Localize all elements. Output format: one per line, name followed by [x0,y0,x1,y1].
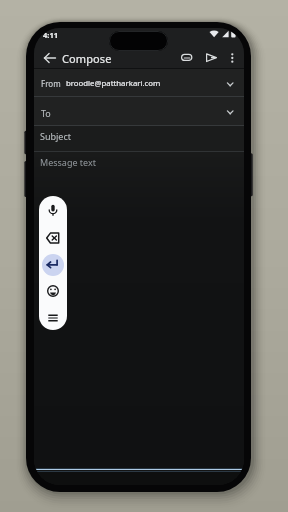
button[interactable]: To [34,97,244,125]
button[interactable] [43,308,63,328]
staticText: Subject [40,130,72,142]
button[interactable]: Subject [34,125,244,152]
button[interactable] [223,48,241,68]
staticText: broodle@pattharkari.com [66,78,161,89]
staticText: From [41,78,61,89]
button[interactable] [176,48,197,68]
staticText: Message text [40,156,97,168]
button[interactable] [40,48,60,68]
staticText: To [41,107,51,119]
staticText: 4:11 [43,30,58,40]
button[interactable] [42,254,64,276]
button[interactable] [43,281,63,301]
button[interactable] [43,228,63,248]
staticText: Compose [62,51,112,66]
button[interactable]: Message text [34,152,244,468]
button[interactable] [43,200,63,220]
button[interactable] [201,48,222,68]
button[interactable]: From [34,69,244,97]
